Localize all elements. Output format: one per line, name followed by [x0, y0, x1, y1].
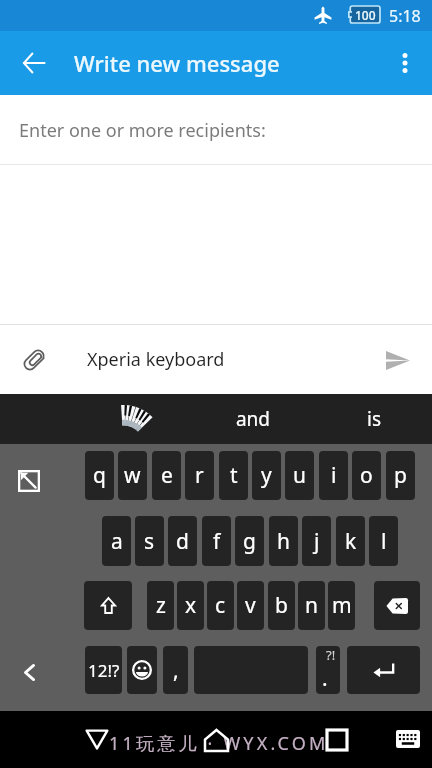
- button[interactable]: Backspace: [374, 581, 420, 630]
- button[interactable]: Piano keyboard: [112, 399, 152, 439]
- button[interactable]: z: [147, 581, 174, 630]
- button[interactable]: x: [177, 581, 204, 630]
- staticText: o: [360, 461, 373, 490]
- button[interactable]: n: [298, 581, 325, 630]
- button[interactable]: y: [252, 451, 281, 500]
- staticText: w: [124, 461, 141, 490]
- button[interactable]: Resize keyboard: [10, 462, 48, 500]
- staticText: Enter one or more recipients:: [19, 118, 266, 143]
- button[interactable]: s: [135, 516, 164, 566]
- button[interactable]: Recents: [320, 723, 353, 756]
- staticText: t: [230, 461, 238, 490]
- staticText: c: [215, 591, 226, 620]
- button[interactable]: ,: [163, 646, 188, 694]
- staticText: r: [195, 461, 204, 490]
- staticText: e: [161, 461, 173, 490]
- button[interactable]: l: [369, 516, 398, 566]
- button[interactable]: r: [185, 451, 214, 500]
- staticText: 100: [355, 7, 376, 23]
- button[interactable]: More options: [383, 41, 427, 85]
- button[interactable]: p: [386, 451, 415, 500]
- staticText: ,: [173, 656, 179, 685]
- staticText: x: [185, 591, 197, 620]
- staticText: h: [277, 527, 290, 556]
- button[interactable]: k: [336, 516, 365, 566]
- button[interactable]: Keyboard: [393, 724, 423, 754]
- button[interactable]: and: [231, 406, 275, 432]
- button[interactable]: Back: [12, 41, 56, 85]
- staticText: m: [332, 591, 352, 620]
- button[interactable]: w: [118, 451, 147, 500]
- staticText: 11玩意儿 · WYX.COM: [109, 731, 329, 756]
- button[interactable]: v: [237, 581, 264, 630]
- staticText: n: [305, 591, 318, 620]
- staticText: j: [314, 527, 320, 556]
- button[interactable]: c: [207, 581, 234, 630]
- button[interactable]: Enter: [347, 646, 420, 694]
- button[interactable]: g: [235, 516, 264, 566]
- staticText: .: [322, 664, 328, 693]
- staticText: d: [176, 527, 189, 556]
- button[interactable]: m: [328, 581, 355, 630]
- button[interactable]: f: [202, 516, 231, 566]
- button[interactable]: q: [85, 451, 114, 500]
- button[interactable]: Home: [200, 724, 233, 757]
- staticText: Xperia keyboard: [87, 347, 225, 372]
- button[interactable]: j: [302, 516, 331, 566]
- staticText: z: [156, 591, 166, 620]
- staticText: p: [394, 461, 407, 490]
- button[interactable]: Emoji: [127, 646, 157, 694]
- button[interactable]: Period: [316, 646, 340, 694]
- staticText: q: [93, 461, 106, 490]
- staticText: l: [381, 527, 387, 556]
- button[interactable]: 12!?: [85, 646, 122, 694]
- button[interactable]: o: [352, 451, 381, 500]
- button[interactable]: Back: [80, 722, 113, 755]
- button[interactable]: Collapse keyboard: [11, 654, 45, 688]
- staticText: k: [345, 527, 357, 556]
- staticText: b: [275, 591, 288, 620]
- staticText: Write new message: [74, 48, 280, 78]
- staticText: a: [111, 527, 123, 556]
- staticText: s: [144, 527, 155, 556]
- button[interactable]: t: [219, 451, 248, 500]
- staticText: y: [261, 461, 272, 490]
- button[interactable]: h: [269, 516, 298, 566]
- button[interactable]: i: [319, 451, 348, 500]
- staticText: f: [213, 527, 221, 556]
- button[interactable]: Shift: [84, 581, 132, 630]
- staticText: 5:18: [389, 5, 421, 27]
- button[interactable]: Attach: [10, 336, 58, 384]
- button[interactable]: u: [285, 451, 314, 500]
- button[interactable]: a: [102, 516, 131, 566]
- button[interactable]: is: [352, 406, 396, 432]
- staticText: g: [243, 527, 256, 556]
- staticText: v: [245, 591, 256, 620]
- button[interactable]: Send: [374, 336, 422, 384]
- button[interactable]: e: [152, 451, 181, 500]
- staticText: ?!: [326, 646, 336, 664]
- button[interactable]: d: [168, 516, 197, 566]
- button[interactable]: b: [268, 581, 295, 630]
- staticText: u: [293, 461, 306, 490]
- staticText: 12!?: [88, 659, 120, 682]
- staticText: i: [331, 461, 337, 490]
